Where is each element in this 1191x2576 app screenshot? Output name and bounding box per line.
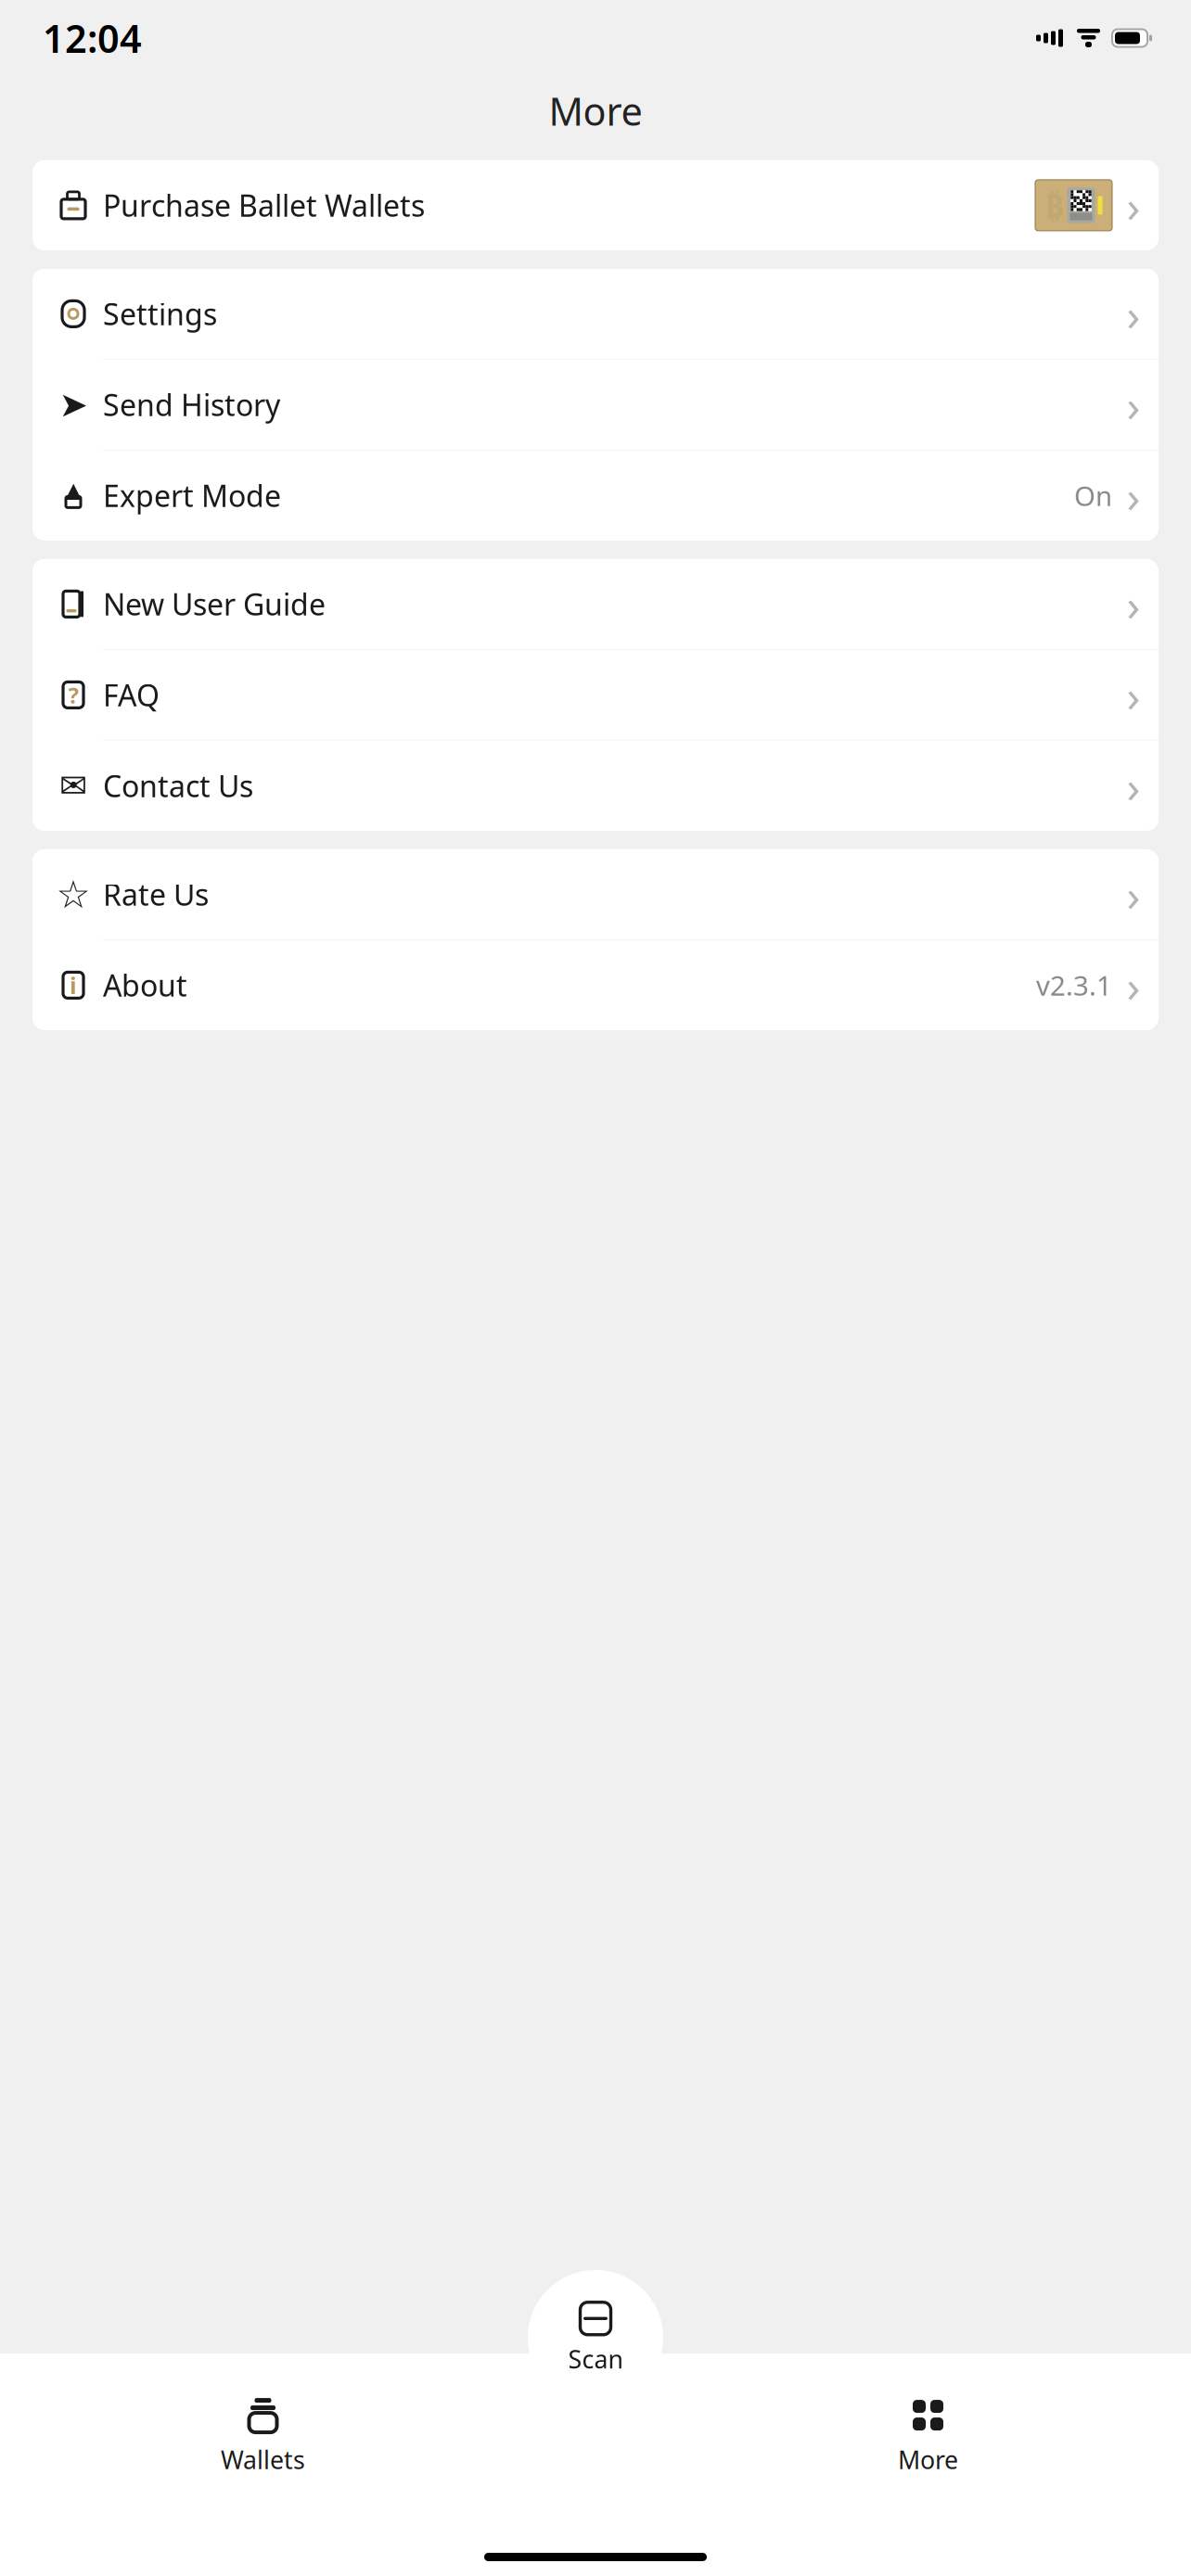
button[interactable]: i [32, 940, 1159, 1030]
staticText: New User Guide [103, 584, 326, 624]
staticText: Settings [103, 294, 217, 333]
staticText: Send History [103, 385, 280, 424]
button[interactable]: New User Guide [32, 559, 1159, 649]
staticText: v2.3.1 [1036, 967, 1112, 1003]
staticText: Rate Us [103, 875, 209, 914]
staticText: › [1127, 865, 1140, 924]
button[interactable]: Settings [32, 269, 1159, 359]
staticText: › [1127, 375, 1140, 434]
button[interactable]: ➤ [32, 360, 1159, 450]
staticText: ✉ [59, 767, 87, 805]
staticText: ₿ [1045, 183, 1064, 227]
staticText: › [1127, 756, 1140, 815]
button[interactable]: ▲ [32, 451, 1159, 541]
staticText: › [1127, 665, 1140, 724]
staticText: On [1074, 477, 1112, 514]
staticText: ➤ [59, 385, 88, 424]
staticText: › [1127, 284, 1140, 343]
button[interactable]: ☆ [32, 849, 1159, 939]
staticText: Scan [568, 2343, 623, 2375]
staticText: › [1127, 574, 1140, 634]
staticText: › [1127, 956, 1140, 1015]
button[interactable]: ? [32, 650, 1159, 740]
staticText: Expert Mode [103, 476, 281, 515]
button[interactable]: More [665, 2382, 1191, 2493]
staticText: Purchase Ballet Wallets [103, 186, 425, 225]
button[interactable]: Purchase Ballet Wallets [32, 160, 1159, 250]
button[interactable]: Scan [528, 2270, 663, 2405]
staticText: i [70, 970, 77, 1001]
staticText: ▲ [65, 478, 81, 502]
staticText: 12:04 [43, 13, 142, 64]
button[interactable]: Wallets [0, 2382, 526, 2493]
staticText: ☆ [56, 872, 90, 916]
staticText: Contact Us [103, 766, 253, 805]
staticText: More [549, 85, 642, 136]
staticText: Wallets [221, 2443, 305, 2476]
staticText: ? [68, 680, 78, 710]
staticText: › [1127, 176, 1140, 235]
button[interactable]: ✉ [32, 741, 1159, 831]
staticText: About [103, 965, 187, 1005]
staticText: › [1127, 466, 1140, 525]
staticText: More [898, 2443, 958, 2476]
staticText: FAQ [103, 675, 160, 715]
